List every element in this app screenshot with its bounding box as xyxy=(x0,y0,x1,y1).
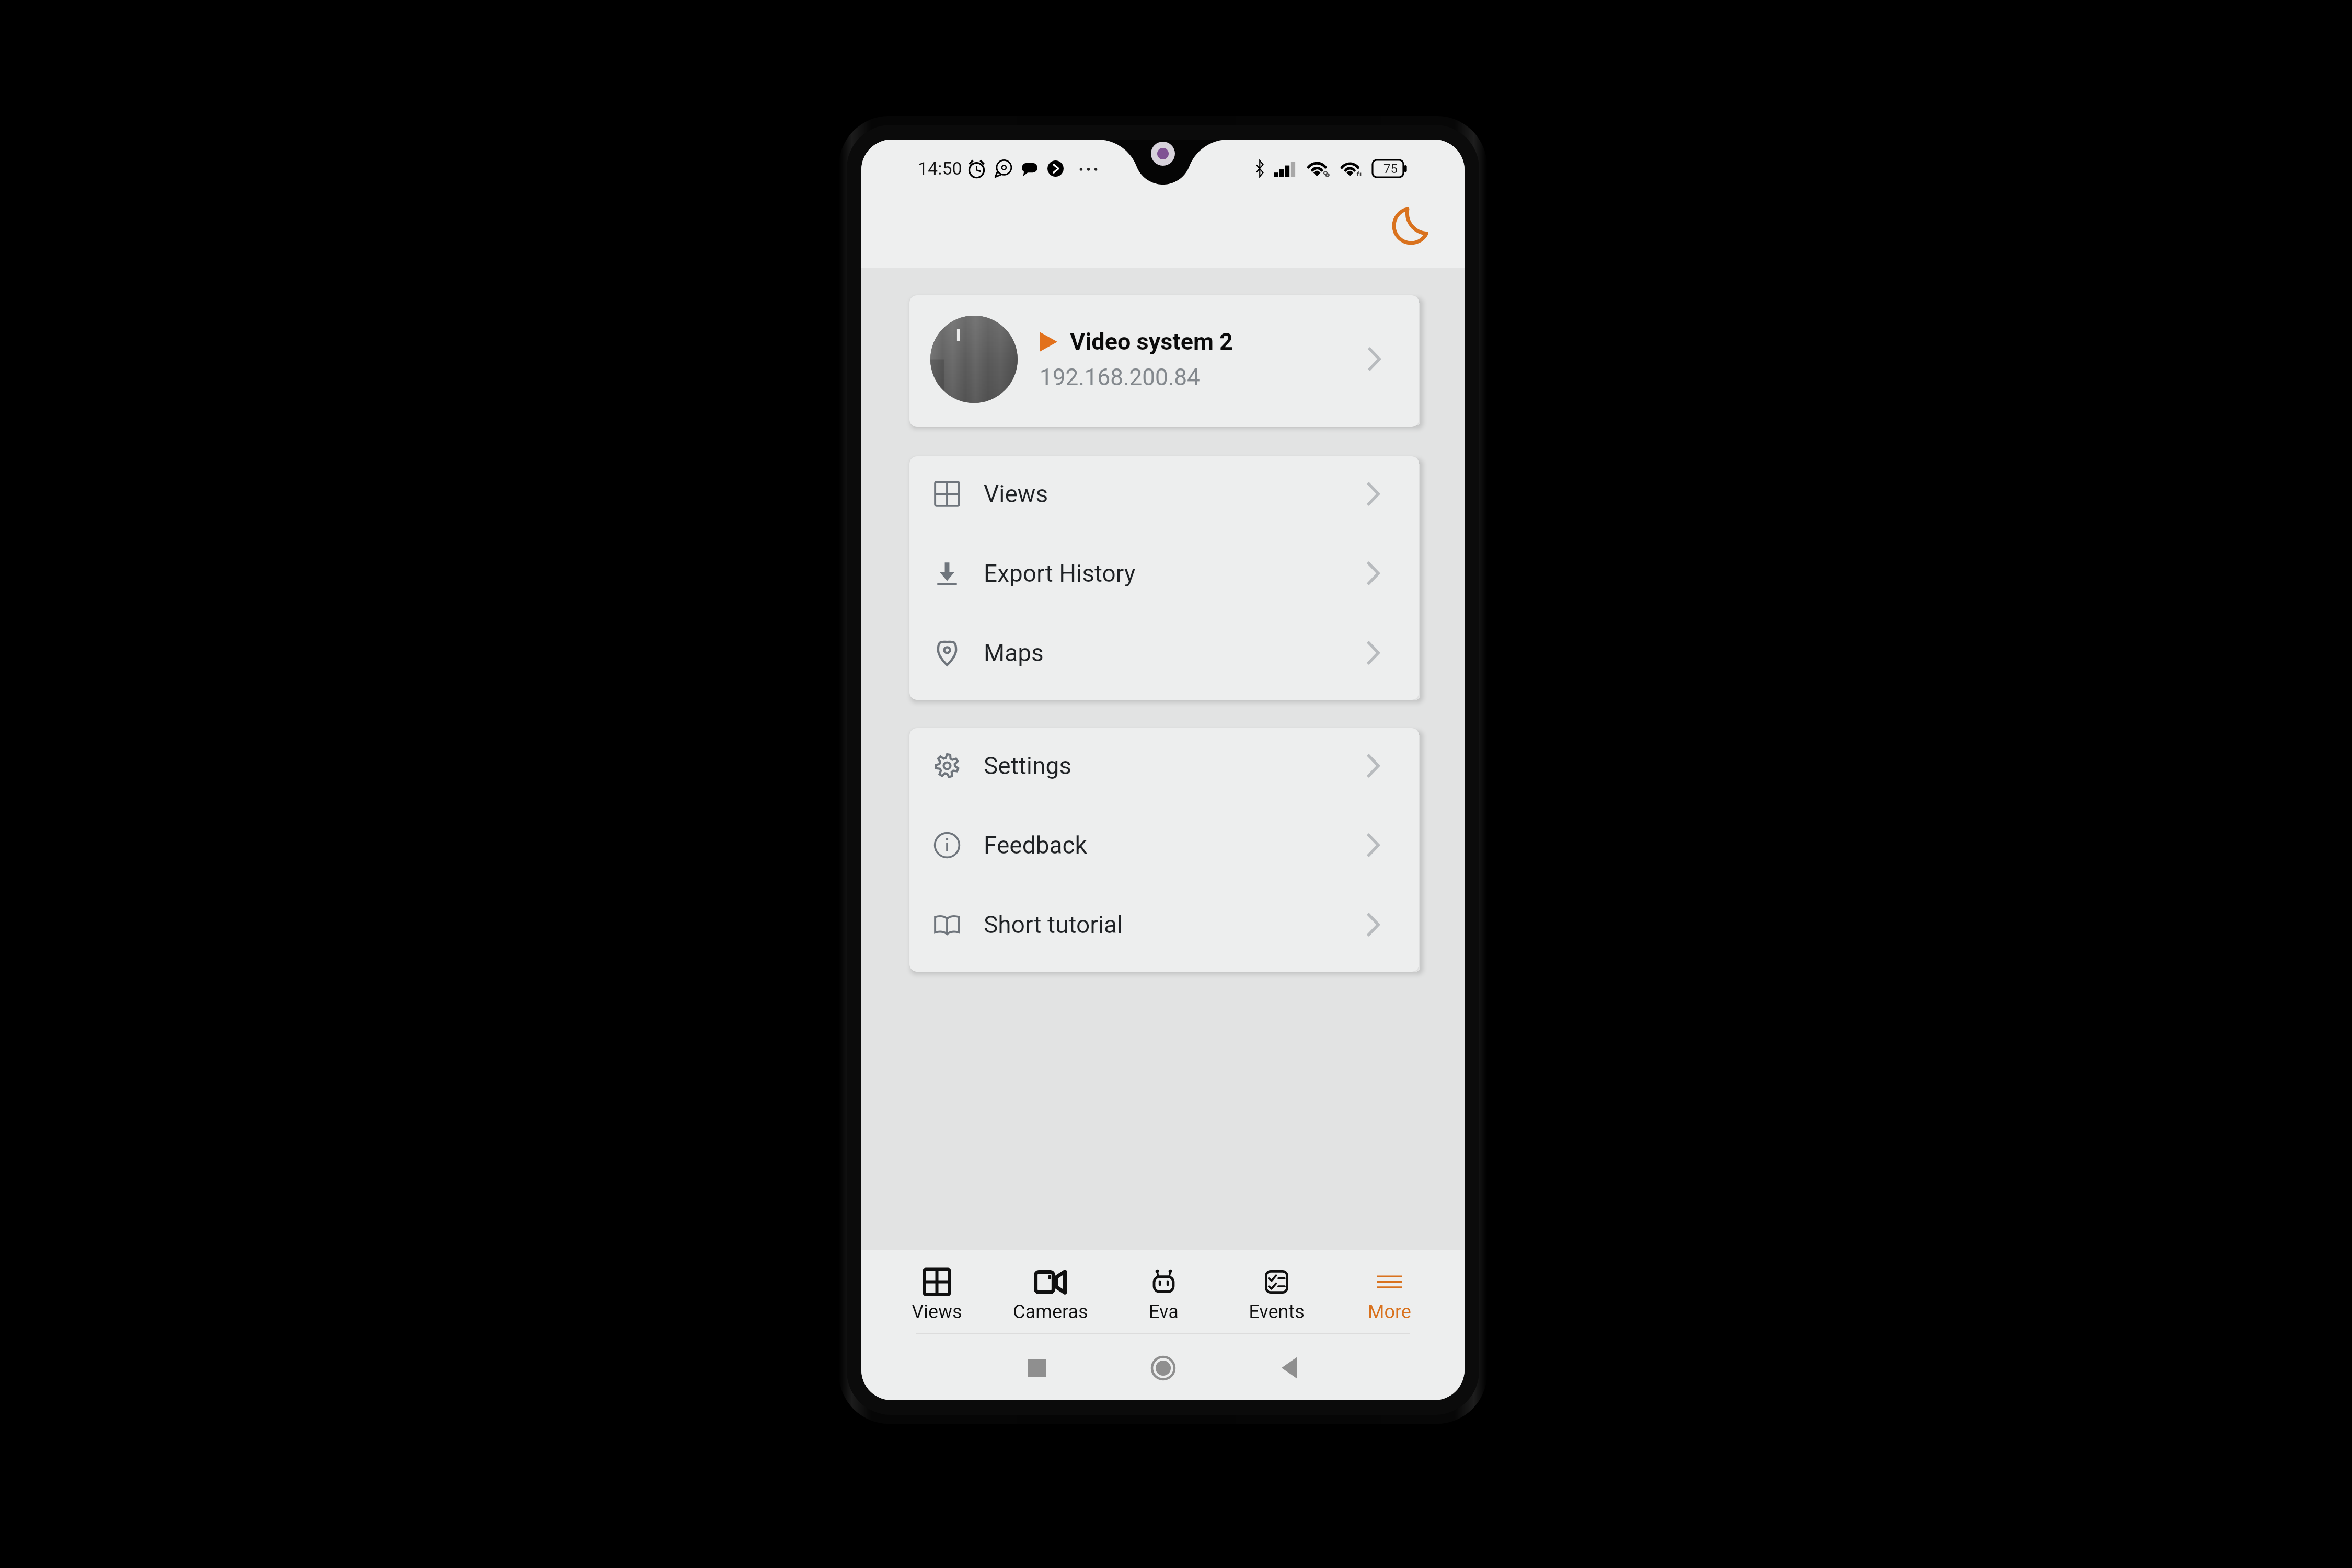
staticText: Events xyxy=(1249,1301,1305,1323)
staticText: Cameras xyxy=(1013,1301,1088,1323)
staticText: More xyxy=(1368,1301,1411,1323)
button[interactable]: Export History xyxy=(909,536,1419,615)
staticText: Eva xyxy=(1149,1301,1179,1323)
button[interactable]: Cameras xyxy=(994,1250,1107,1333)
staticText: 14:50 xyxy=(918,158,962,179)
button[interactable]: Settings xyxy=(909,728,1419,808)
staticText: 192.168.200.84 xyxy=(1040,364,1200,391)
button[interactable]: More xyxy=(1333,1250,1446,1333)
staticText: Views xyxy=(984,480,1048,508)
button[interactable]: Feedback xyxy=(909,808,1419,887)
button[interactable]: Views xyxy=(909,456,1419,536)
button[interactable]: Eva xyxy=(1107,1250,1220,1333)
staticText: 75 xyxy=(1383,162,1398,176)
staticText: Video system 2 xyxy=(1070,328,1233,355)
staticText: Views xyxy=(912,1301,962,1323)
staticText: Settings xyxy=(984,752,1071,780)
button[interactable]: Home xyxy=(1150,1355,1176,1381)
button[interactable]: Back xyxy=(1276,1355,1302,1381)
button[interactable]: Recent apps xyxy=(1023,1355,1050,1381)
button[interactable]: Events xyxy=(1220,1250,1333,1333)
button[interactable]: Views xyxy=(880,1250,994,1333)
staticText: Export History xyxy=(984,559,1136,587)
button[interactable]: Short tutorial xyxy=(909,887,1419,966)
button[interactable]: Video system 2 xyxy=(909,295,1419,427)
staticText: Maps xyxy=(984,639,1044,667)
staticText: Short tutorial xyxy=(984,910,1123,939)
button[interactable]: Maps xyxy=(909,615,1419,695)
staticText: Feedback xyxy=(984,831,1087,859)
button[interactable]: Night mode xyxy=(1384,198,1440,254)
